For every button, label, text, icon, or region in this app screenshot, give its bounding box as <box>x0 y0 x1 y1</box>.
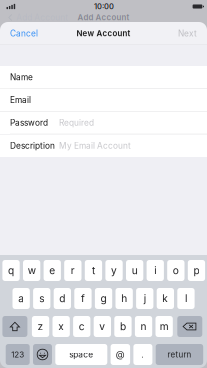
button[interactable]: Password <box>0 111 207 134</box>
button[interactable]: g <box>95 288 112 309</box>
staticText: g <box>101 292 107 305</box>
button[interactable]: space <box>55 344 107 365</box>
button[interactable]: q <box>2 260 20 281</box>
staticText: l <box>185 292 187 305</box>
staticText: r <box>71 264 75 277</box>
button[interactable]: t <box>85 260 102 281</box>
button[interactable]: a <box>12 288 30 309</box>
staticText: y <box>111 264 117 277</box>
staticText: Add Account <box>77 13 129 22</box>
button[interactable]: j <box>136 288 153 309</box>
staticText: k <box>162 292 168 305</box>
staticText: e <box>49 264 55 277</box>
staticText: z <box>37 320 43 333</box>
button[interactable]: Cancel <box>10 28 38 38</box>
staticText: Next <box>178 28 197 38</box>
staticText: 123 <box>11 350 24 359</box>
staticText: return <box>167 350 191 359</box>
staticText: Password <box>10 118 48 128</box>
staticText: space <box>69 349 93 359</box>
button[interactable]: x <box>52 316 70 337</box>
button[interactable]: Description <box>0 134 207 157</box>
staticText: Email <box>10 95 31 105</box>
staticText: f <box>81 292 85 305</box>
staticText: Description <box>10 141 55 151</box>
staticText: w <box>28 264 36 277</box>
staticText: Name <box>10 72 33 82</box>
staticText: u <box>132 264 138 277</box>
staticText: Cancel <box>10 28 38 38</box>
button[interactable]: Delete <box>177 316 202 337</box>
button[interactable]: o <box>167 260 184 281</box>
button[interactable]: d <box>54 288 71 309</box>
button[interactable]: h <box>115 288 133 309</box>
button[interactable]: return <box>156 344 203 365</box>
button[interactable]: r <box>64 260 81 281</box>
staticText: n <box>141 320 147 333</box>
staticText: . <box>141 349 144 360</box>
staticText: o <box>173 264 179 277</box>
button[interactable]: Email <box>0 89 207 112</box>
staticText: b <box>120 320 126 333</box>
button[interactable]: y <box>105 260 123 281</box>
staticText: a <box>18 292 24 305</box>
staticText: d <box>59 292 65 305</box>
staticText: j <box>144 292 146 305</box>
staticText: 10:00 <box>94 2 114 11</box>
button[interactable]: u <box>126 260 143 281</box>
button[interactable]: Next <box>178 28 197 38</box>
button[interactable]: Emoji <box>33 344 52 365</box>
button[interactable]: i <box>147 260 164 281</box>
button[interactable]: w <box>23 260 40 281</box>
staticText: i <box>154 264 156 277</box>
staticText: @ <box>116 349 125 360</box>
button[interactable]: 123 <box>6 344 30 365</box>
staticText: s <box>39 292 44 305</box>
staticText: Required <box>59 118 94 128</box>
button[interactable]: m <box>155 316 173 337</box>
staticText: m <box>160 320 169 333</box>
button[interactable]: v <box>94 316 111 337</box>
button[interactable]: c <box>73 316 90 337</box>
button[interactable]: . <box>133 344 152 365</box>
staticText: c <box>79 320 85 333</box>
button[interactable]: b <box>114 316 132 337</box>
button[interactable]: e <box>44 260 61 281</box>
button[interactable]: z <box>32 316 49 337</box>
staticText: t <box>92 264 95 277</box>
staticText: h <box>121 292 127 305</box>
button[interactable]: p <box>188 260 205 281</box>
staticText: My Email Account <box>59 141 131 151</box>
staticText: p <box>193 264 199 277</box>
button[interactable]: n <box>135 316 152 337</box>
staticText: v <box>99 320 105 333</box>
button[interactable]: f <box>74 288 92 309</box>
button[interactable]: Shift <box>2 316 27 337</box>
button[interactable]: k <box>157 288 174 309</box>
button[interactable]: s <box>33 288 50 309</box>
button[interactable]: l <box>177 288 195 309</box>
button[interactable]: @ <box>111 344 130 365</box>
staticText: x <box>58 320 64 333</box>
button[interactable]: Name <box>0 66 207 89</box>
staticText: q <box>8 264 14 277</box>
staticText: New Account <box>76 29 130 38</box>
